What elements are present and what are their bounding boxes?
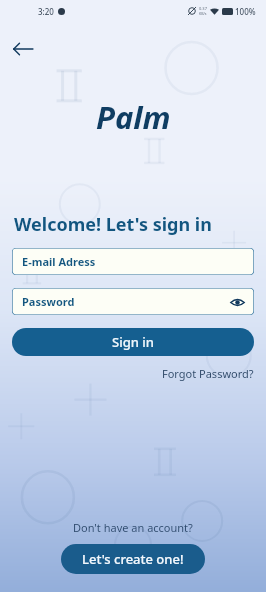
staticText: KB/s <box>199 11 207 16</box>
staticText: 100% <box>235 6 256 17</box>
staticText: 0.37 <box>199 6 207 11</box>
staticText: 3:20 <box>38 6 54 17</box>
staticText: Don't have an account? <box>73 520 193 535</box>
button[interactable]: Show password <box>228 293 246 311</box>
staticText: Let's create one! <box>82 550 184 568</box>
button[interactable]: Back <box>8 34 38 64</box>
staticText: Welcome! Let's sign in <box>14 212 212 237</box>
staticText: Sign in <box>112 333 154 351</box>
staticText: E-mail Adress <box>22 254 96 269</box>
staticText: Palm <box>96 96 171 138</box>
button[interactable]: Forgot Password? <box>162 364 266 383</box>
button[interactable]: E-mail Adress <box>12 248 254 275</box>
button[interactable]: Let's create one! <box>61 544 205 574</box>
button[interactable]: Password <box>12 288 254 315</box>
staticText: Password <box>22 294 75 309</box>
button[interactable]: Sign in <box>12 328 254 356</box>
